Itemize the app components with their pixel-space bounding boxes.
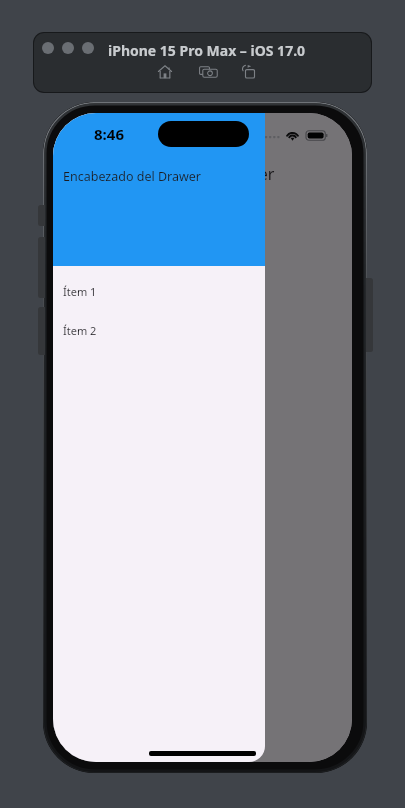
staticText: Mi App con Drawer <box>131 163 275 185</box>
staticText: Ítem 2 <box>63 323 97 338</box>
button[interactable]: Home <box>158 65 172 79</box>
button[interactable]: Rotate <box>241 65 256 79</box>
staticText: iPhone 15 Pro Max – iOS 17.0 <box>108 41 306 60</box>
staticText: 8:46 <box>94 124 124 144</box>
staticText: Ítem 1 <box>63 284 97 299</box>
button[interactable]: Screenshot <box>199 65 218 79</box>
button[interactable]: Ítem 2 <box>53 311 265 350</box>
button[interactable]: Ítem 1 <box>53 272 265 311</box>
staticText: Encabezado del Drawer <box>63 168 201 185</box>
